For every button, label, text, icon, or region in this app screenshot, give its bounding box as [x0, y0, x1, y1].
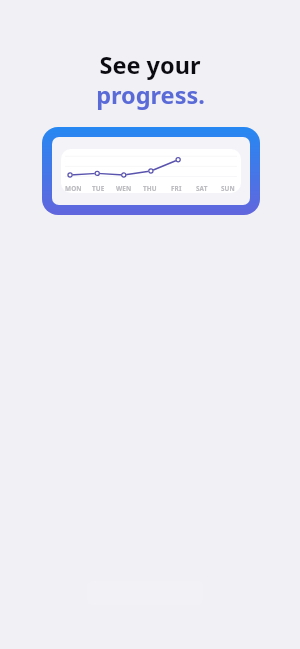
staticText: SUN [221, 184, 235, 193]
staticText: See your [99, 49, 201, 81]
staticText: THU [143, 184, 157, 193]
staticText: MON [65, 184, 82, 193]
staticText: progress. [96, 79, 205, 111]
staticText: WEN [116, 184, 132, 193]
staticText: TUE [92, 184, 105, 193]
staticText: FRI [171, 184, 182, 193]
button[interactable]: MON [42, 127, 260, 215]
staticText: SAT [196, 184, 208, 193]
